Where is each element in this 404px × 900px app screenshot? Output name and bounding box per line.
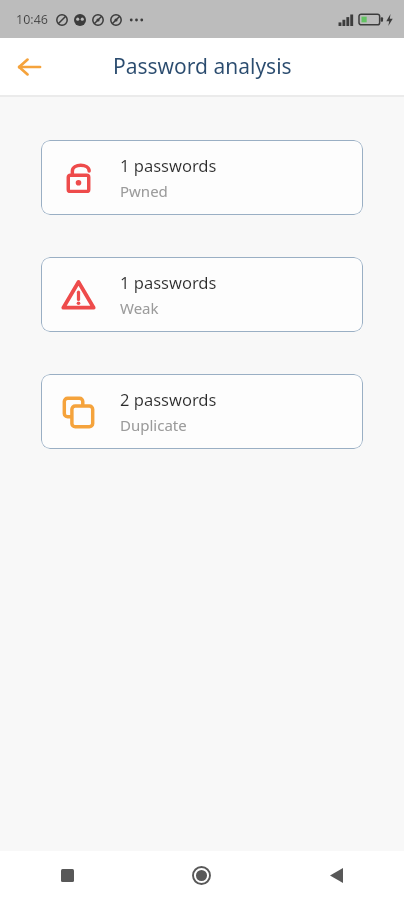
button[interactable]: 2 passwords bbox=[41, 374, 363, 449]
button[interactable]: Navigate back bbox=[7, 45, 51, 89]
staticText: Password analysis bbox=[113, 52, 292, 81]
button[interactable]: 1 passwords bbox=[41, 140, 363, 215]
staticText: 2 passwords bbox=[120, 388, 217, 410]
staticText: 1 passwords bbox=[120, 271, 217, 293]
button[interactable]: Back bbox=[269, 851, 404, 900]
button[interactable]: Recent apps bbox=[0, 851, 134, 900]
staticText: Weak bbox=[120, 298, 159, 318]
staticText: 10:46 bbox=[16, 11, 48, 28]
staticText: Duplicate bbox=[120, 415, 187, 435]
staticText: Pwned bbox=[120, 181, 168, 201]
button[interactable]: 1 passwords bbox=[41, 257, 363, 332]
staticText: 1 passwords bbox=[120, 154, 217, 176]
button[interactable]: Home bbox=[134, 851, 269, 900]
